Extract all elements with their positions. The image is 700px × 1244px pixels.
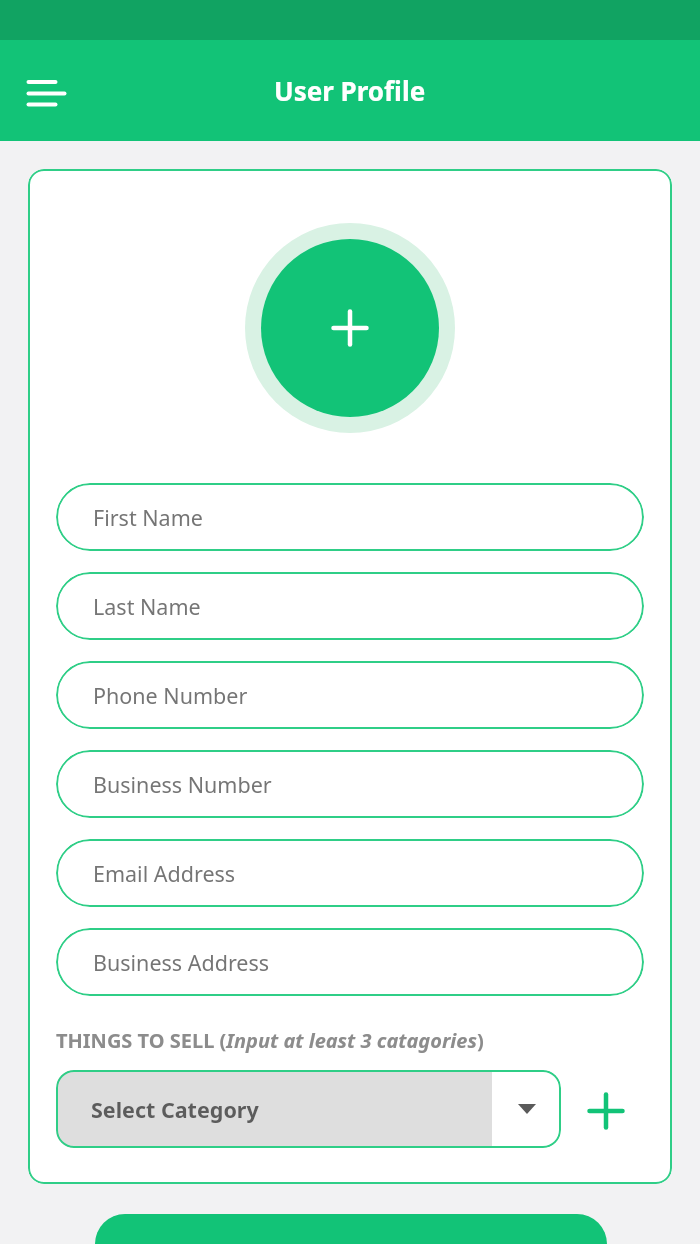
staticText: Email Address	[93, 859, 236, 888]
staticText: Select Category	[91, 1095, 259, 1124]
button[interactable]	[95, 1214, 607, 1244]
staticText: User Profile	[274, 73, 426, 108]
staticText: Last Name	[93, 592, 201, 621]
button[interactable]: Phone Number	[56, 661, 644, 729]
button[interactable]: Last Name	[56, 572, 644, 640]
button[interactable]	[18, 72, 76, 110]
staticText: Business Number	[93, 770, 272, 799]
button[interactable]: Business Address	[56, 928, 644, 996]
staticText: Phone Number	[93, 681, 248, 710]
button[interactable]	[584, 1089, 628, 1133]
staticText: THINGS TO SELL (Input at least 3 catagor…	[56, 1027, 484, 1054]
staticText: Business Address	[93, 948, 270, 977]
button[interactable]: First Name	[56, 483, 644, 551]
button[interactable]: Business Number	[56, 750, 644, 818]
button[interactable]: Email Address	[56, 839, 644, 907]
button[interactable]: Select Category	[56, 1070, 561, 1148]
staticText: First Name	[93, 503, 203, 532]
button[interactable]	[245, 223, 455, 433]
